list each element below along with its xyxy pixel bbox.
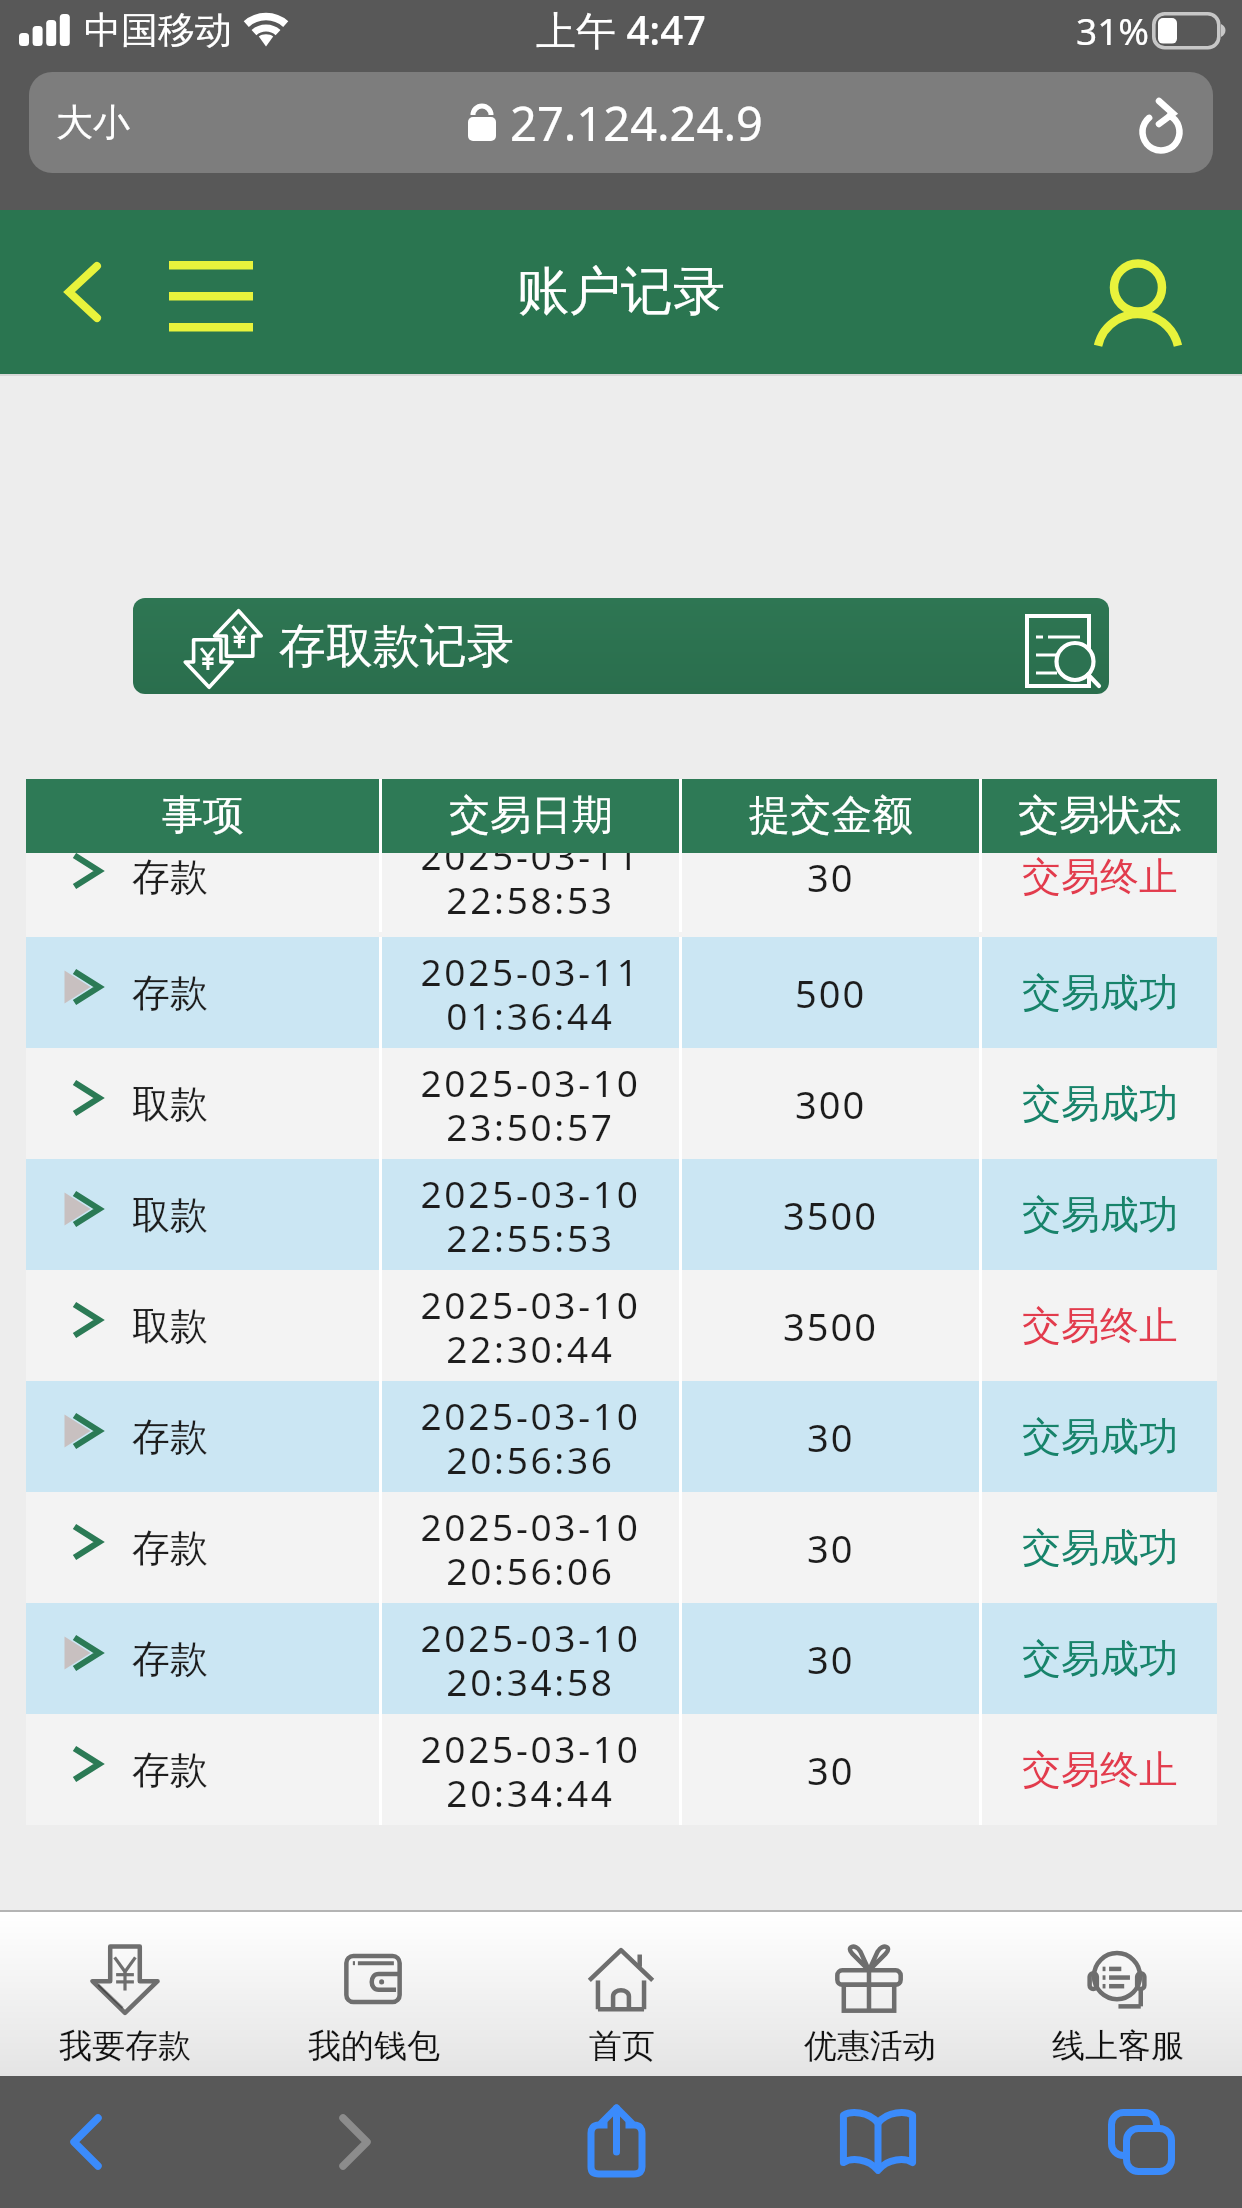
staticText: 存款 — [132, 969, 208, 1017]
staticText: 3500 — [783, 1300, 878, 1352]
button[interactable]: 存款 — [26, 1381, 1217, 1492]
staticText: 大小 — [56, 99, 130, 146]
staticText: 存款 — [132, 853, 208, 901]
staticText: 2025-03-10 20:56:06 — [420, 1501, 641, 1595]
button[interactable]: Account — [1094, 256, 1182, 348]
staticText: 2025-03-10 20:34:44 — [420, 1723, 641, 1817]
button[interactable]: 存款 — [26, 937, 1217, 1048]
staticText: 2025-03-10 20:56:36 — [420, 1390, 641, 1484]
button[interactable]: Reload — [1138, 98, 1186, 156]
staticText: 首页 — [589, 2025, 655, 2067]
staticText: 交易成功 — [1022, 1412, 1178, 1461]
staticText: 交易终止 — [1022, 1745, 1178, 1794]
staticText: 2025-03-11 01:36:44 — [420, 946, 641, 1040]
staticText: 交易终止 — [1022, 1301, 1178, 1350]
staticText: 2025-03-11 22:58:53 — [420, 853, 641, 924]
staticText: 2025-03-10 23:50:57 — [420, 1057, 641, 1151]
staticText: 上午 4:47 — [536, 2, 706, 57]
button[interactable]: Menu — [169, 261, 253, 331]
staticText: 交易状态 — [1018, 790, 1182, 842]
staticText: 我的钱包 — [308, 2025, 440, 2067]
button[interactable]: 首页 — [498, 1912, 746, 2076]
button[interactable]: 我的钱包 — [249, 1912, 498, 2076]
staticText: 30 — [807, 1411, 855, 1463]
staticText: 30 — [807, 1744, 855, 1796]
staticText: 2025-03-10 22:55:53 — [420, 1168, 641, 1262]
staticText: 30 — [807, 1522, 855, 1574]
button[interactable]: Back — [53, 2097, 119, 2187]
staticText: 取款 — [132, 1080, 208, 1128]
staticText: 交易成功 — [1022, 1190, 1178, 1239]
staticText: 2025-03-10 20:34:58 — [420, 1612, 641, 1706]
button[interactable]: Share — [570, 2086, 663, 2194]
staticText: 存款 — [132, 1635, 208, 1683]
staticText: 交易成功 — [1022, 1079, 1178, 1128]
staticText: 31% — [1076, 5, 1150, 55]
staticText: 存款 — [132, 1413, 208, 1461]
staticText: 取款 — [132, 1191, 208, 1239]
staticText: 交易成功 — [1022, 1523, 1178, 1572]
button[interactable]: 大小 — [29, 72, 1213, 173]
button[interactable]: 存取款记录 — [133, 598, 1109, 694]
staticText: 30 — [807, 1633, 855, 1685]
staticText: 线上客服 — [1052, 2025, 1184, 2067]
button[interactable]: Tabs — [1090, 2091, 1193, 2193]
staticText: 中国移动 — [84, 7, 232, 54]
button[interactable]: 存款 — [26, 1603, 1217, 1714]
staticText: 500 — [795, 967, 867, 1019]
staticText: 交易终止 — [1022, 853, 1178, 901]
button[interactable]: Bookmarks — [822, 2093, 934, 2189]
button[interactable]: Back — [65, 262, 101, 322]
staticText: 账户记录 — [517, 259, 725, 325]
button[interactable]: 取款 — [26, 1270, 1217, 1381]
button[interactable]: 线上客服 — [994, 1912, 1242, 2076]
button[interactable]: 取款 — [26, 1048, 1217, 1159]
button[interactable]: 优惠活动 — [746, 1912, 994, 2076]
staticText: 2025-03-10 22:30:44 — [420, 1279, 641, 1373]
staticText: 优惠活动 — [804, 2025, 936, 2067]
button[interactable]: 存款 — [26, 1714, 1217, 1825]
button[interactable]: 取款 — [26, 1159, 1217, 1270]
staticText: 存款 — [132, 1746, 208, 1794]
staticText: 27.124.24.9 — [510, 91, 763, 155]
staticText: 交易成功 — [1022, 1634, 1178, 1683]
staticText: 存款 — [132, 1524, 208, 1572]
staticText: 存取款记录 — [279, 617, 514, 676]
staticText: 提交金额 — [749, 790, 913, 842]
staticText: 3500 — [783, 1189, 878, 1241]
staticText: 300 — [795, 1078, 867, 1130]
button[interactable]: 我要存款 — [0, 1912, 249, 2076]
staticText: 交易成功 — [1022, 968, 1178, 1017]
staticText: 事项 — [162, 790, 244, 842]
button[interactable]: 存款 — [26, 1492, 1217, 1603]
button[interactable]: 存款 — [26, 853, 1217, 932]
staticText: 30 — [807, 853, 855, 903]
staticText: 我要存款 — [59, 2025, 191, 2067]
button[interactable]: Forward — [322, 2097, 388, 2187]
staticText: 交易日期 — [449, 790, 613, 842]
staticText: 取款 — [132, 1302, 208, 1350]
button[interactable]: Search records — [1025, 614, 1101, 688]
